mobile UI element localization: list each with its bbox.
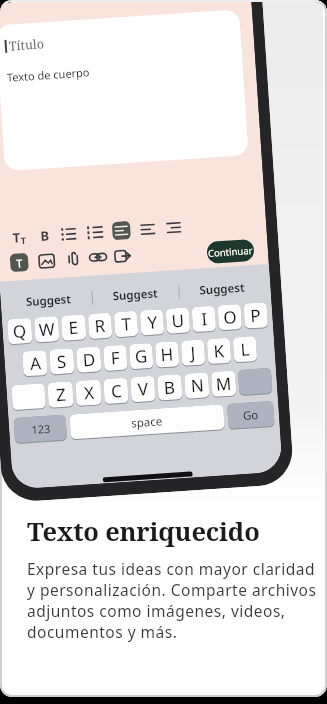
staticText: O — [223, 305, 238, 329]
button[interactable]: V — [130, 376, 156, 402]
button[interactable] — [112, 221, 131, 240]
staticText: Suggest — [25, 291, 72, 310]
staticText: Expresa tus ideas con mayor claridad — [27, 558, 316, 579]
staticText: J — [190, 341, 196, 364]
staticText: 123 — [31, 421, 51, 437]
staticText: Continuar — [208, 244, 253, 260]
button[interactable] — [238, 368, 272, 395]
button[interactable]: Continuar — [206, 239, 255, 264]
staticText: B — [40, 226, 50, 245]
staticText: adjuntos como imágenes, videos, — [27, 600, 286, 621]
staticText: I — [201, 307, 208, 330]
staticText: y personalización. Comparte archivos — [27, 579, 317, 600]
button[interactable]: M — [211, 370, 236, 397]
button[interactable]: S — [49, 348, 75, 375]
button[interactable]: F — [103, 345, 128, 371]
staticText: F — [110, 346, 120, 369]
staticText: Texto de cuerpo — [6, 64, 90, 85]
staticText: C — [110, 379, 123, 403]
button[interactable]: 123 — [13, 415, 67, 443]
button[interactable]: P — [243, 302, 268, 329]
button[interactable] — [88, 248, 108, 267]
staticText: Z — [55, 383, 67, 406]
staticText: T — [20, 234, 27, 246]
button[interactable]: J — [181, 339, 205, 366]
staticText: Título — [8, 35, 45, 55]
staticText: P — [249, 304, 262, 327]
staticText: V — [137, 377, 150, 401]
button[interactable]: L — [233, 336, 257, 362]
staticText: G — [134, 344, 148, 368]
button[interactable]: N — [184, 372, 210, 399]
staticText: K — [213, 339, 225, 363]
staticText: L — [240, 337, 250, 361]
button[interactable] — [11, 383, 46, 410]
button[interactable]: A — [22, 350, 48, 376]
button[interactable]: E — [61, 314, 86, 341]
staticText: T — [121, 312, 132, 336]
staticText: documentos y más. — [27, 621, 178, 642]
button[interactable] — [60, 226, 77, 243]
staticText: H — [160, 342, 174, 366]
button[interactable]: T — [10, 228, 29, 247]
button[interactable]: Suggest — [179, 274, 266, 304]
staticText: S — [56, 349, 68, 373]
button[interactable]: B — [157, 374, 183, 400]
staticText: R — [94, 314, 106, 338]
staticText: Q — [12, 319, 27, 343]
button[interactable]: U — [166, 307, 190, 334]
button[interactable]: space — [69, 404, 225, 439]
button[interactable]: G — [129, 343, 153, 369]
staticText: Y — [147, 310, 158, 334]
staticText: T — [12, 228, 21, 247]
button[interactable]: X — [75, 379, 102, 406]
staticText: Suggest — [112, 285, 159, 304]
staticText: U — [171, 309, 185, 332]
button[interactable]: Go — [227, 401, 275, 429]
button[interactable]: T — [114, 311, 138, 337]
button[interactable]: K — [207, 338, 231, 364]
staticText: M — [215, 372, 232, 396]
button[interactable]: I — [192, 306, 216, 332]
staticText: Suggest — [199, 279, 246, 298]
button[interactable]: R — [88, 312, 112, 339]
button[interactable]: H — [155, 341, 179, 368]
button[interactable] — [87, 224, 104, 241]
staticText: X — [83, 381, 95, 404]
button[interactable] — [64, 250, 81, 267]
button[interactable]: O — [217, 304, 242, 330]
staticText: Go — [242, 407, 259, 424]
button[interactable]: T — [10, 253, 29, 272]
button[interactable] — [166, 220, 182, 236]
staticText: N — [190, 373, 204, 397]
staticText: D — [82, 348, 97, 371]
staticText: T — [16, 255, 24, 271]
button[interactable]: Suggest — [5, 286, 92, 315]
button[interactable]: Suggest — [92, 280, 179, 310]
button[interactable]: Título — [0, 9, 249, 171]
button[interactable]: W — [34, 316, 59, 342]
button[interactable]: C — [103, 378, 129, 404]
staticText: W — [38, 317, 55, 341]
button[interactable]: D — [76, 346, 102, 373]
staticText: space — [131, 413, 164, 431]
button[interactable]: Z — [47, 381, 74, 408]
button[interactable] — [140, 221, 156, 237]
staticText: Texto enriquecido — [27, 514, 260, 549]
staticText: E — [68, 316, 79, 339]
staticText: A — [29, 351, 42, 375]
button[interactable]: Q — [7, 318, 33, 344]
button[interactable] — [113, 247, 132, 265]
button[interactable]: Y — [140, 309, 164, 336]
staticText: B — [163, 375, 177, 399]
button[interactable] — [38, 252, 56, 270]
button[interactable]: B — [37, 226, 52, 245]
